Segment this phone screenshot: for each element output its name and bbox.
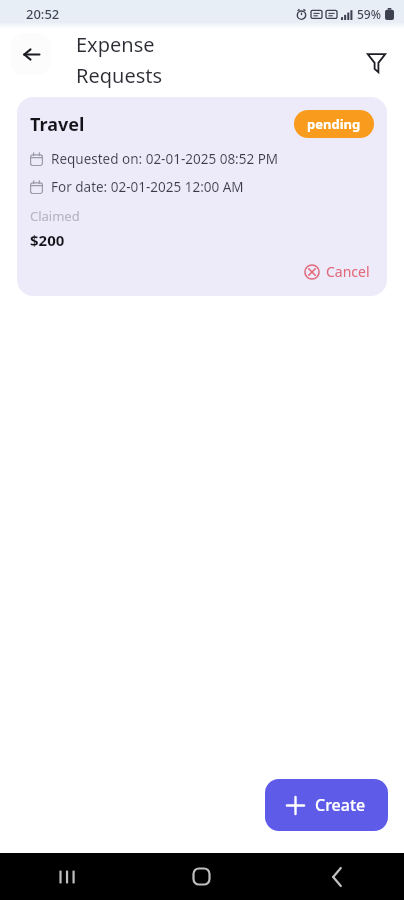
button[interactable]: Filter — [356, 42, 396, 82]
button[interactable]: Home — [134, 853, 269, 900]
button[interactable]: Travel — [17, 97, 387, 296]
staticText: Expense — [76, 31, 155, 58]
button[interactable]: Recents — [0, 853, 134, 900]
staticText: Requested on: 02-01-2025 08:52 PM — [51, 150, 279, 168]
staticText: pending — [307, 115, 361, 133]
button[interactable]: Back — [11, 33, 51, 75]
staticText: Cancel — [326, 262, 370, 281]
button[interactable]: Back — [269, 853, 404, 900]
button[interactable]: pending — [294, 110, 374, 138]
staticText: Create — [315, 794, 366, 816]
staticText: Requests — [76, 62, 163, 89]
staticText: 20:52 — [26, 5, 60, 23]
button[interactable]: Create — [265, 779, 388, 831]
button[interactable]: Cancel — [300, 259, 374, 284]
staticText: Claimed — [30, 207, 80, 225]
staticText: $200 — [30, 230, 65, 250]
staticText: 59% — [357, 6, 381, 22]
staticText: Travel — [30, 112, 85, 137]
staticText: For date: 02-01-2025 12:00 AM — [51, 178, 244, 196]
